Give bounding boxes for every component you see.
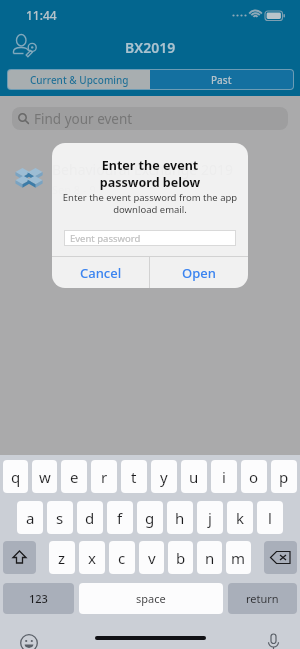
staticText: g — [145, 508, 155, 528]
staticText: n — [205, 548, 215, 568]
staticText: Find your event — [34, 110, 133, 128]
button[interactable]: e — [61, 460, 87, 493]
button[interactable]: m — [226, 541, 251, 574]
button[interactable]: b — [168, 541, 193, 574]
staticText: v — [148, 548, 156, 568]
button[interactable]: Open — [150, 257, 248, 288]
button[interactable]: k — [227, 501, 253, 534]
button[interactable]: p — [271, 460, 297, 493]
staticText: Current & Upcoming — [30, 73, 129, 87]
button[interactable]: c — [109, 541, 135, 574]
button[interactable]: i — [211, 460, 237, 493]
button[interactable]: h — [167, 501, 193, 534]
staticText: Open — [182, 264, 216, 282]
staticText: 123 — [29, 591, 48, 606]
button[interactable]: Shift — [3, 541, 36, 574]
button[interactable]: t — [121, 460, 147, 493]
button[interactable]: y — [151, 460, 177, 493]
staticText: y — [160, 467, 168, 487]
staticText: b — [176, 548, 186, 568]
staticText: d — [85, 508, 95, 528]
button[interactable]: v — [139, 541, 164, 574]
button[interactable]: a — [17, 501, 43, 534]
button[interactable]: return — [228, 583, 297, 614]
staticText: q — [11, 467, 21, 487]
staticText: i — [222, 467, 226, 487]
button[interactable]: g — [137, 501, 163, 534]
button[interactable]: Past — [150, 70, 293, 89]
button[interactable]: space — [79, 583, 223, 614]
button[interactable]: j — [197, 501, 223, 534]
staticText: m — [231, 548, 246, 568]
staticText: k — [236, 508, 245, 528]
staticText: h — [175, 508, 185, 528]
button[interactable]: Account — [12, 32, 40, 60]
button[interactable]: Emoji — [20, 634, 38, 649]
staticText: e — [70, 467, 79, 487]
staticText: 11:44 — [26, 7, 57, 23]
staticText: space — [136, 591, 166, 606]
button[interactable]: l — [257, 501, 283, 534]
staticText: Cancel — [80, 264, 122, 282]
button[interactable]: Find your event — [12, 107, 288, 130]
staticText: z — [58, 548, 66, 568]
button[interactable]: r — [91, 460, 117, 493]
staticText: j — [208, 508, 212, 528]
button[interactable]: Backspace — [264, 541, 297, 574]
staticText: f — [117, 508, 123, 528]
staticText: o — [249, 467, 259, 487]
button[interactable]: 123 — [3, 583, 74, 614]
staticText: Behavioural Exchange 2019 — [52, 160, 233, 179]
staticText: Event password — [70, 232, 141, 245]
button[interactable]: u — [181, 460, 207, 493]
staticText: u — [189, 467, 199, 487]
button[interactable]: x — [79, 541, 105, 574]
button[interactable]: s — [47, 501, 73, 534]
staticText: c — [118, 548, 126, 568]
staticText: Past — [211, 73, 232, 87]
staticText: Enter the event password below — [62, 157, 238, 191]
button[interactable]: Dictation — [267, 633, 280, 649]
staticText: a — [26, 508, 35, 528]
staticText: w — [39, 467, 51, 487]
button[interactable]: d — [77, 501, 103, 534]
staticText: Enter the event password from the app do… — [59, 191, 241, 216]
staticText: return — [246, 591, 279, 606]
staticText: s — [56, 508, 64, 528]
button[interactable]: w — [32, 460, 57, 493]
staticText: t — [131, 467, 137, 487]
button[interactable]: Cancel — [52, 257, 149, 288]
staticText: r — [101, 467, 108, 487]
staticText: x — [88, 548, 96, 568]
button[interactable]: n — [197, 541, 222, 574]
button[interactable]: q — [3, 460, 28, 493]
staticText: Sep 8 - 9 — [52, 182, 96, 197]
staticText: BX2019 — [125, 38, 176, 57]
button[interactable]: Current & Upcoming — [8, 70, 150, 89]
button[interactable]: o — [241, 460, 267, 493]
button[interactable]: z — [49, 541, 75, 574]
button[interactable]: Event password — [65, 231, 235, 245]
button[interactable]: f — [107, 501, 133, 534]
staticText: p — [279, 467, 289, 487]
staticText: l — [268, 508, 272, 528]
